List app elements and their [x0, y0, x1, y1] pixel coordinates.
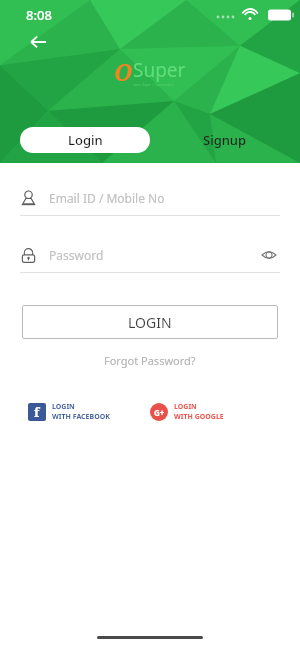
- button[interactable]: Signup: [150, 127, 300, 153]
- staticText: LOGIN: [128, 313, 172, 332]
- button[interactable]: LOGIN: [22, 305, 278, 339]
- staticText: Email ID / Mobile No: [49, 190, 280, 206]
- button[interactable]: Password: [20, 242, 280, 268]
- staticText: LOGIN: [174, 402, 197, 412]
- staticText: Forgot Password?: [104, 353, 196, 368]
- staticText: Saves Super | Supermarket: [133, 83, 174, 87]
- staticText: 8:08: [26, 6, 52, 24]
- staticText: LOGIN: [52, 402, 75, 412]
- staticText: WITH FACEBOOK: [52, 412, 110, 422]
- staticText: Super: [133, 57, 186, 83]
- button[interactable]: Email ID / Mobile No: [20, 185, 280, 211]
- staticText: Login: [68, 131, 103, 149]
- staticText: f: [34, 403, 40, 421]
- staticText: O: [114, 56, 133, 87]
- button[interactable]: Login: [20, 127, 150, 153]
- button[interactable]: Show password: [258, 244, 280, 266]
- staticText: G+: [154, 407, 165, 418]
- staticText: Signup: [203, 131, 247, 149]
- staticText: Password: [49, 247, 258, 263]
- button[interactable]: f: [28, 402, 150, 422]
- button[interactable]: G+: [150, 402, 272, 422]
- button[interactable]: Back: [22, 26, 54, 58]
- staticText: WITH GOOGLE: [174, 412, 224, 422]
- button[interactable]: Forgot Password?: [0, 349, 300, 372]
